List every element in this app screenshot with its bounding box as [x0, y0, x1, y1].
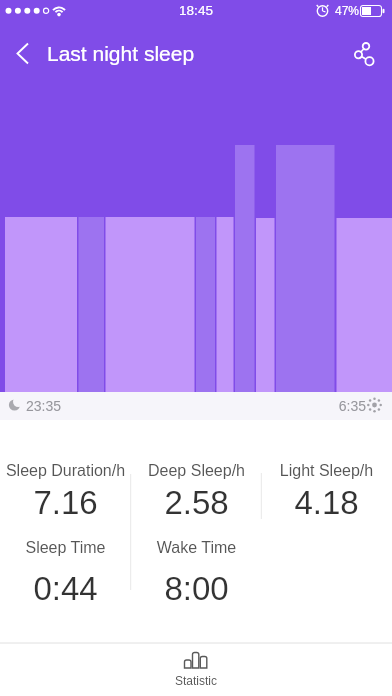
staticText: 2.58: [131, 484, 262, 521]
staticText: Light Sleep/h: [261, 462, 392, 480]
staticText: Wake Time: [131, 539, 262, 557]
staticText: 7.16: [0, 484, 131, 521]
staticText: Last night sleep: [47, 42, 297, 65]
staticText: 4.18: [261, 484, 392, 521]
staticText: 23:35: [26, 398, 86, 414]
staticText: 18:45: [0, 3, 392, 18]
staticText: Deep Sleep/h: [131, 462, 262, 480]
staticText: 8:00: [131, 570, 262, 607]
button[interactable]: Statistic: [146, 644, 246, 696]
staticText: 6:35: [306, 398, 366, 414]
staticText: 47%: [335, 4, 361, 17]
staticText: 0:44: [0, 570, 131, 607]
staticText: Sleep Duration/h: [0, 462, 131, 480]
staticText: Sleep Time: [0, 539, 131, 557]
staticText: Statistic: [146, 674, 246, 687]
button[interactable]: [4, 38, 38, 72]
button[interactable]: [346, 38, 386, 72]
